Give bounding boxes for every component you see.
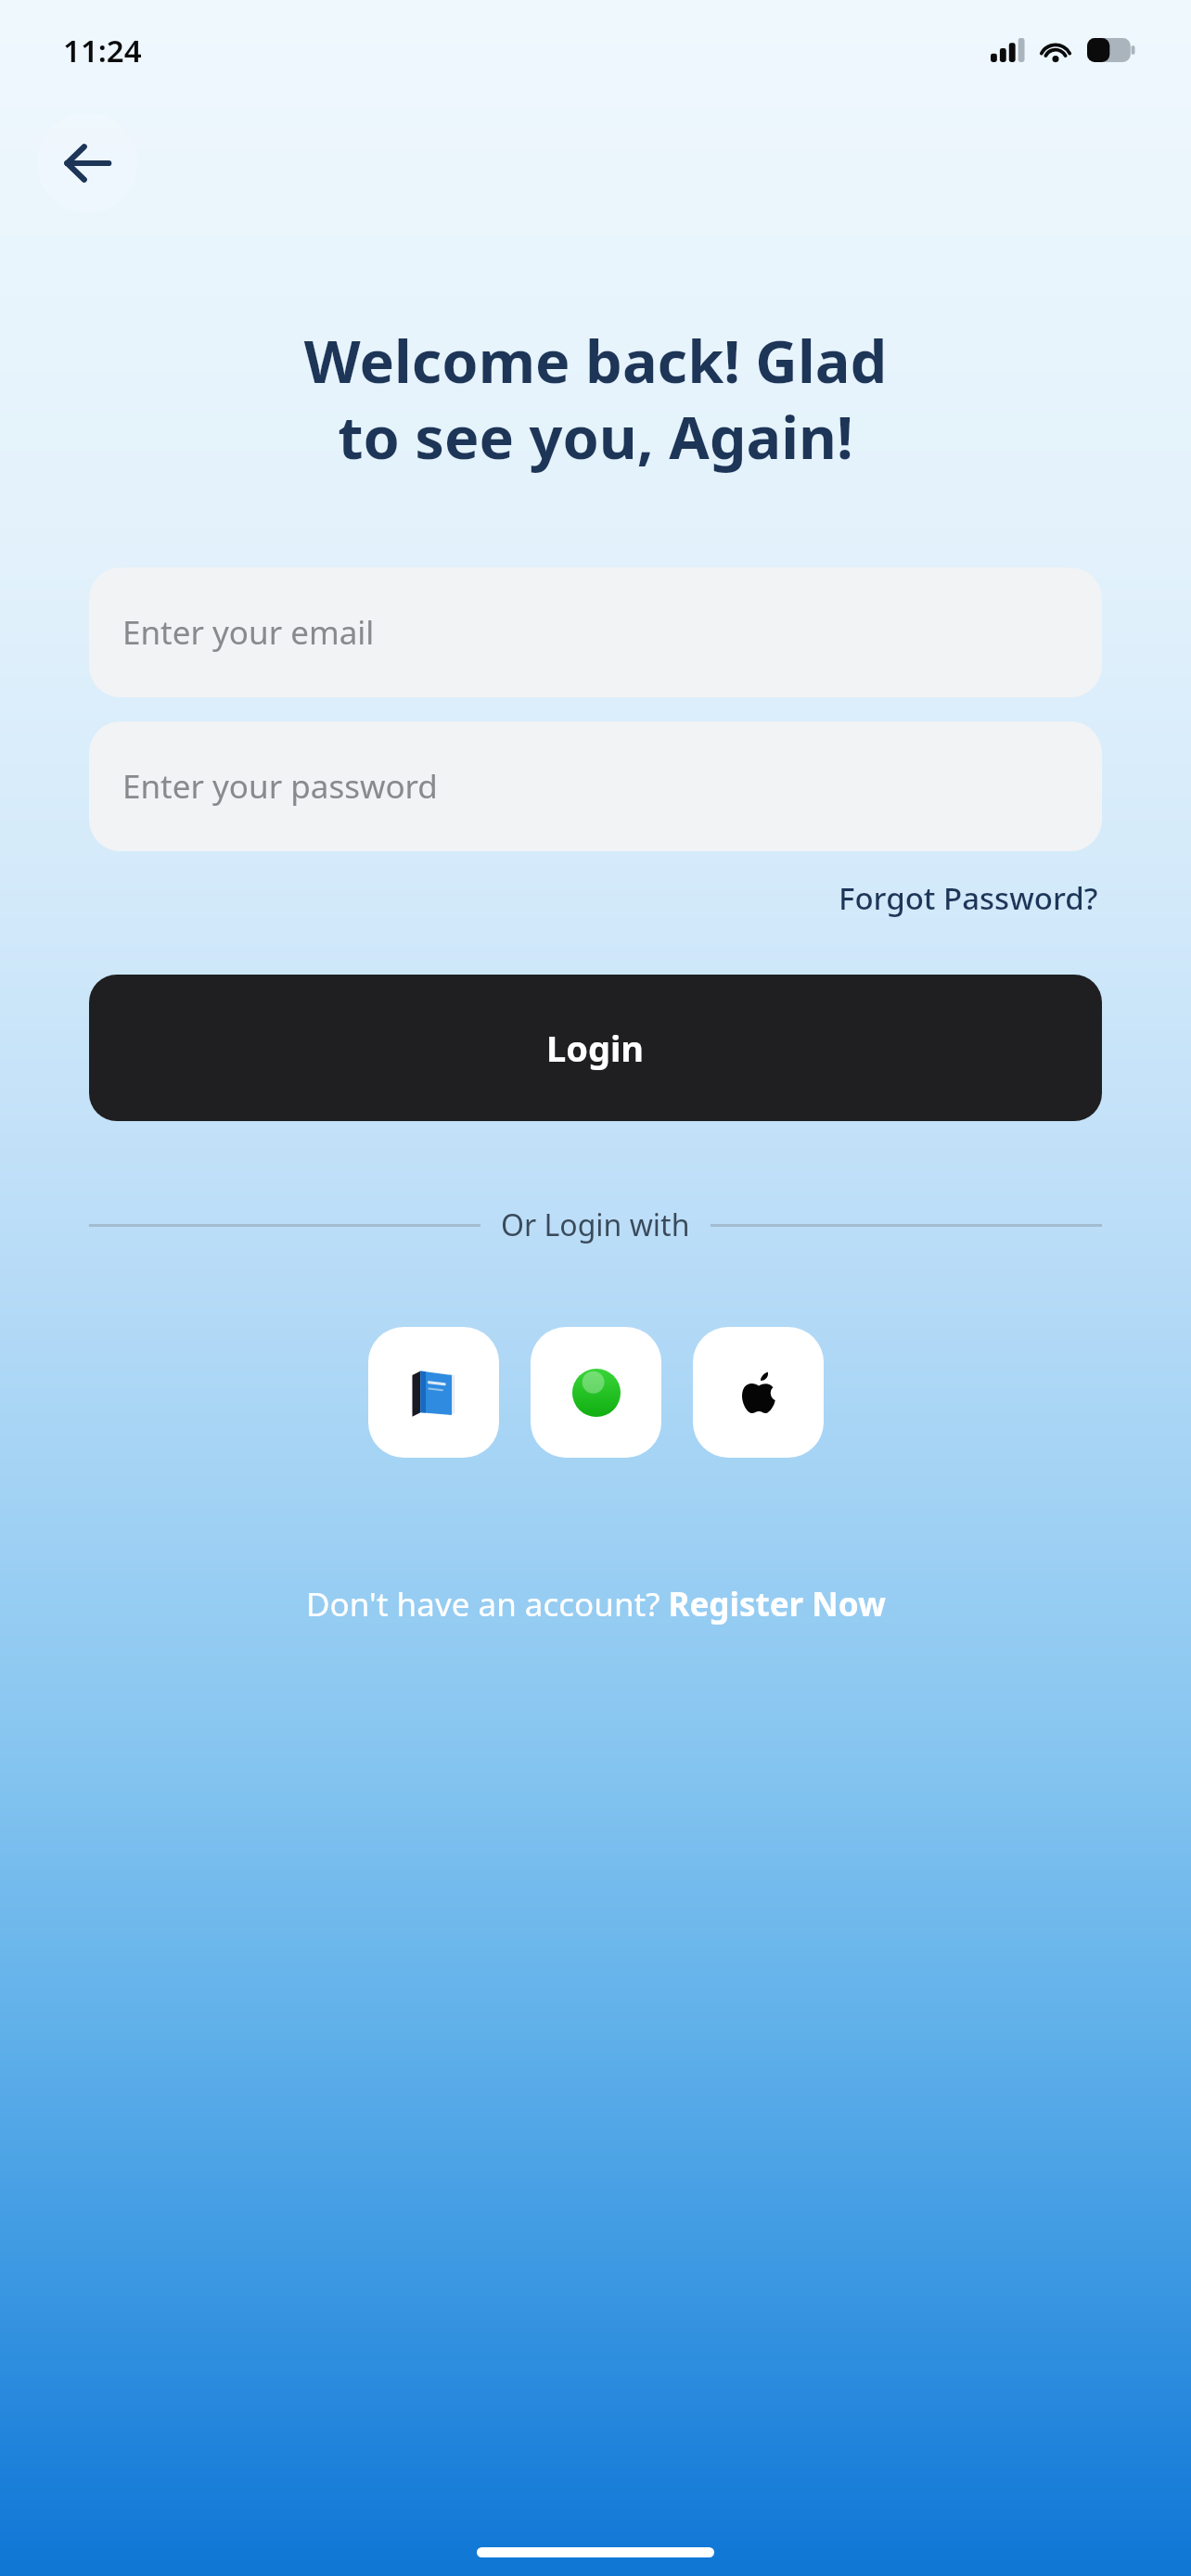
staticText: Or Login with (501, 1205, 690, 1245)
staticText: Login (546, 1024, 645, 1072)
button[interactable]: Enter your email (89, 567, 1102, 697)
button[interactable]: Forgot Password? (835, 872, 1102, 925)
button[interactable]: Login with Google (531, 1327, 661, 1458)
button[interactable]: Enter your password (89, 721, 1102, 851)
button[interactable]: Login with Apple (693, 1327, 824, 1458)
staticText: Enter your email (122, 610, 375, 655)
button[interactable]: Back (37, 113, 137, 213)
button[interactable]: Login with Facebook (368, 1327, 499, 1458)
staticText: 11:24 (63, 30, 142, 71)
button[interactable]: Login (89, 975, 1102, 1121)
staticText: Enter your password (122, 764, 438, 809)
button[interactable]: Don't have an account? Register Now (297, 1575, 895, 1634)
staticText: Forgot Password? (839, 877, 1098, 919)
staticText: Don't have an account? Register Now (306, 1582, 886, 1626)
staticText: Welcome back! Glad to see you, Again! (48, 321, 1143, 477)
